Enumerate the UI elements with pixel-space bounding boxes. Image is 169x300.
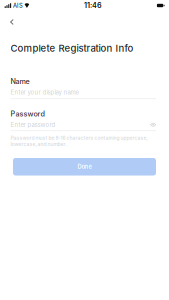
- staticText: Enter your display name: [11, 89, 79, 96]
- button[interactable]: Back: [0, 13, 34, 30]
- button[interactable]: Done: [13, 158, 156, 175]
- staticText: Complete Registration Info: [11, 42, 134, 54]
- staticText: AIS: [13, 2, 23, 9]
- staticText: Done: [77, 163, 91, 170]
- button[interactable]: Enter your display name: [11, 86, 156, 98]
- staticText: 11:46: [84, 1, 102, 10]
- button[interactable]: Enter password: [11, 119, 156, 131]
- staticText: Password: [11, 109, 45, 118]
- staticText: Password must be 8-16 characters contain…: [11, 135, 148, 147]
- staticText: Enter password: [11, 121, 56, 128]
- staticText: Name: [11, 77, 30, 86]
